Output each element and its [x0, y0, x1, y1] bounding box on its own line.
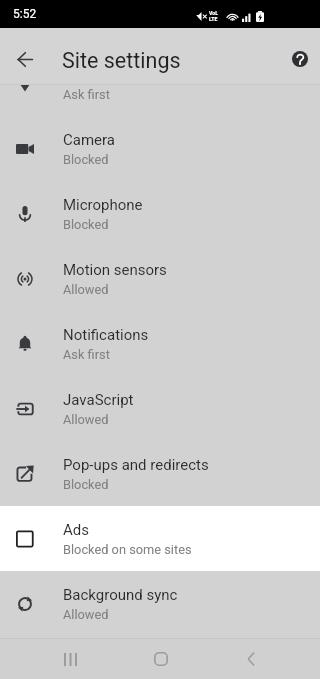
button[interactable]: Motion sensors	[0, 246, 320, 311]
staticText: Ask first	[63, 87, 110, 102]
staticText: Site settings	[62, 48, 181, 73]
button[interactable]: Camera	[0, 116, 320, 181]
button[interactable]: Microphone	[0, 181, 320, 246]
staticText: Blocked on some sites	[63, 542, 192, 557]
staticText: Allowed	[63, 412, 109, 427]
staticText: Notifications	[63, 326, 149, 344]
staticText: Motion sensors	[63, 261, 167, 279]
staticText: Blocked	[63, 217, 109, 232]
staticText: Allowed	[63, 282, 109, 297]
staticText: Blocked	[63, 477, 109, 492]
button[interactable]: Location	[0, 85, 320, 116]
button[interactable]: Back	[4, 38, 46, 80]
staticText: Pop-ups and redirects	[63, 456, 209, 474]
staticText: Ads	[63, 521, 89, 539]
button[interactable]: JavaScript	[0, 376, 320, 441]
staticText: Blocked	[63, 152, 109, 167]
button[interactable]: Ads	[0, 506, 320, 571]
staticText: LTE	[209, 16, 218, 22]
button[interactable]: Back	[228, 639, 274, 679]
button[interactable]: Background sync	[0, 571, 320, 636]
staticText: VoL	[209, 10, 219, 16]
staticText: Camera	[63, 131, 115, 149]
staticText: 5:52	[13, 7, 37, 21]
staticText: Background sync	[63, 586, 178, 604]
button[interactable]: Pop-ups and redirects	[0, 441, 320, 506]
staticText: Microphone	[63, 196, 143, 214]
button[interactable]: Help	[280, 39, 320, 79]
staticText: Allowed	[63, 607, 109, 622]
staticText: JavaScript	[63, 391, 134, 409]
button[interactable]: Recent apps	[47, 639, 93, 679]
staticText: Ask first	[63, 347, 110, 362]
button[interactable]: Home	[138, 639, 184, 679]
button[interactable]: Notifications	[0, 311, 320, 376]
